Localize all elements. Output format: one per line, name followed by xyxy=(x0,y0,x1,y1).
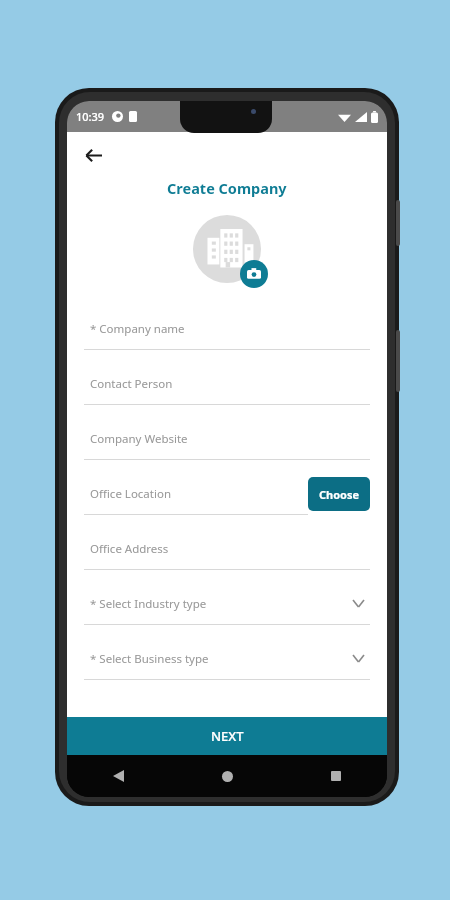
button[interactable]: Back xyxy=(101,759,135,793)
staticText: NEXT xyxy=(211,727,244,745)
button[interactable]: Company Website xyxy=(84,418,370,473)
button[interactable]: * Company name xyxy=(84,308,370,363)
button[interactable]: Recent apps xyxy=(319,759,353,793)
button[interactable]: NEXT xyxy=(67,717,387,755)
staticText: Contact Person xyxy=(90,376,173,392)
staticText: Create Company xyxy=(167,178,287,198)
button[interactable]: * Select Business type xyxy=(84,638,370,693)
staticText: Office Address xyxy=(90,541,169,557)
button[interactable]: Contact Person xyxy=(84,363,370,418)
button[interactable]: Home xyxy=(210,759,244,793)
button[interactable]: Back xyxy=(73,135,113,175)
button[interactable]: * Select Industry type xyxy=(84,583,370,638)
button[interactable]: Choose xyxy=(308,477,370,511)
staticText: 10:39 xyxy=(76,109,105,124)
staticText: * Select Industry type xyxy=(90,596,207,612)
button[interactable]: Change photo xyxy=(240,260,268,288)
staticText: Company Website xyxy=(90,431,188,447)
staticText: * Company name xyxy=(90,321,185,337)
staticText: Choose xyxy=(319,487,360,502)
button[interactable]: Office Address xyxy=(84,528,370,583)
staticText: Office Location xyxy=(90,486,171,502)
staticText: * Select Business type xyxy=(90,651,209,667)
button[interactable]: Office Location xyxy=(84,473,308,514)
